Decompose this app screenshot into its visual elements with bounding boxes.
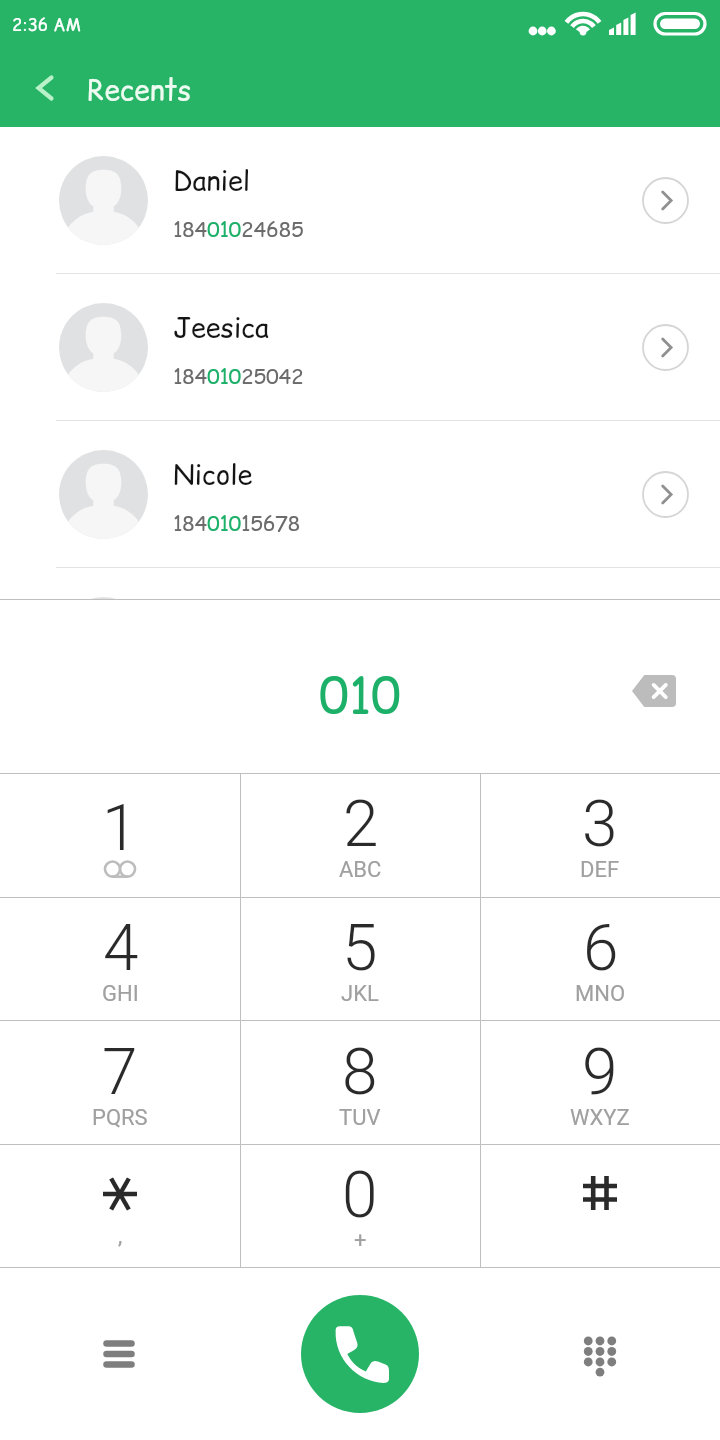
button[interactable]: , bbox=[0, 1145, 240, 1267]
button[interactable]: 3 bbox=[480, 773, 720, 897]
button[interactable]: 6 bbox=[480, 897, 720, 1021]
staticText: 8 bbox=[342, 1035, 378, 1110]
button[interactable]: Call bbox=[301, 1295, 419, 1413]
staticText: 4 bbox=[103, 911, 139, 986]
button[interactable]: 8 bbox=[240, 1021, 480, 1145]
button[interactable]: Call details bbox=[628, 163, 702, 237]
button[interactable]: Kevin bbox=[0, 568, 720, 600]
staticText: 18401024685 bbox=[173, 215, 304, 244]
staticText: 18401015678 bbox=[173, 509, 301, 538]
button[interactable]: Dialpad bbox=[565, 1319, 635, 1389]
button[interactable]: Daniel bbox=[0, 127, 720, 273]
staticText: MNO bbox=[575, 981, 626, 1007]
staticText: 2 bbox=[343, 787, 379, 862]
button[interactable] bbox=[480, 1145, 720, 1267]
button[interactable]: 5 bbox=[240, 897, 480, 1021]
button[interactable]: Call details bbox=[628, 457, 702, 531]
button[interactable]: Call details bbox=[628, 310, 702, 384]
staticText: ABC bbox=[339, 857, 382, 883]
staticText: , bbox=[118, 1223, 123, 1249]
staticText: 2:36 AM bbox=[12, 13, 81, 37]
staticText: 9 bbox=[582, 1035, 618, 1110]
staticText: 6 bbox=[583, 911, 619, 986]
staticText: Nicole bbox=[173, 456, 253, 494]
staticText: PQRS bbox=[92, 1105, 148, 1131]
staticText: 3 bbox=[582, 787, 618, 862]
staticText: Daniel bbox=[173, 162, 251, 200]
staticText: 0 bbox=[342, 1158, 378, 1233]
staticText: 5 bbox=[342, 911, 378, 986]
staticText: 7 bbox=[102, 1035, 138, 1110]
button[interactable]: Call log menu bbox=[84, 1319, 154, 1389]
staticText: JKL bbox=[341, 981, 379, 1007]
button[interactable]: 7 bbox=[0, 1021, 240, 1145]
button[interactable]: Jeesica bbox=[0, 274, 720, 420]
staticText: Recents bbox=[87, 70, 192, 109]
button[interactable]: 4 bbox=[0, 897, 240, 1021]
button[interactable]: 1 bbox=[0, 773, 240, 897]
staticText: 18401025042 bbox=[173, 362, 304, 391]
staticText: 1 bbox=[102, 791, 138, 866]
button[interactable]: 0 bbox=[240, 1145, 480, 1267]
button[interactable]: Nicole bbox=[0, 421, 720, 567]
staticText: WXYZ bbox=[570, 1105, 630, 1131]
staticText: Jeesica bbox=[173, 309, 269, 347]
staticText: DEF bbox=[580, 857, 620, 883]
staticText: + bbox=[354, 1228, 367, 1254]
button[interactable]: 2 bbox=[240, 773, 480, 897]
staticText: TUV bbox=[339, 1105, 381, 1131]
staticText: GHI bbox=[102, 981, 139, 1007]
button[interactable]: Back bbox=[0, 52, 87, 127]
button[interactable]: Backspace bbox=[619, 656, 689, 726]
staticText: 010 bbox=[319, 661, 401, 729]
button[interactable]: 9 bbox=[480, 1021, 720, 1145]
